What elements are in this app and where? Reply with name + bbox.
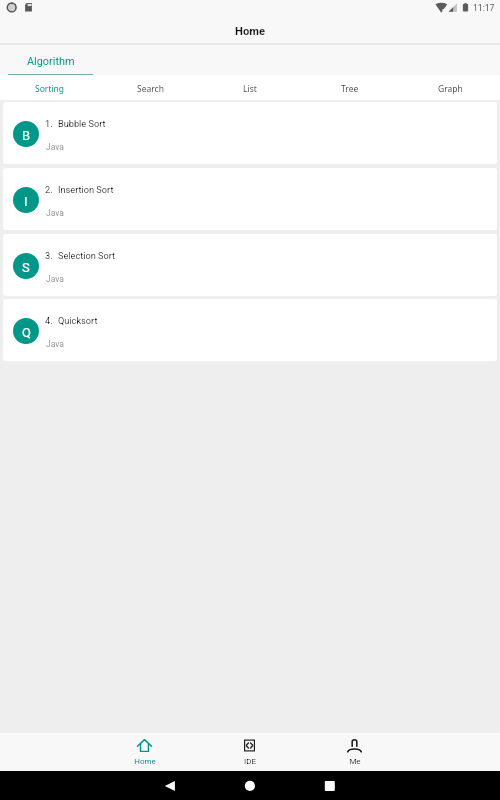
button[interactable]: Tree [300,75,400,100]
staticText: Home [235,25,265,38]
staticText: B [22,128,31,143]
staticText: 4. [45,315,53,326]
staticText: Selection Sort [58,250,116,261]
staticText: List [243,83,257,95]
staticText: 1. [45,118,53,129]
staticText: Tree [341,83,359,95]
button[interactable]: Q [3,299,497,361]
staticText: 11:17 [473,3,495,13]
button[interactable]: Home [92,735,197,771]
button[interactable]: Graph [400,75,500,100]
staticText: Java [46,274,64,284]
staticText: S [22,260,30,275]
staticText: I [24,194,28,209]
staticText: 3. [45,250,53,261]
button[interactable]: Sorting [0,75,100,100]
button[interactable]: B [3,102,497,164]
button[interactable]: IDE [197,735,302,771]
staticText: Search [137,83,164,95]
staticText: Algorithm [27,55,75,68]
staticText: Insertion Sort [58,184,114,195]
button[interactable]: S [3,234,497,296]
staticText: Me [349,757,361,766]
staticText: Q [22,325,31,340]
staticText: IDE [244,757,256,766]
button[interactable]: Search [100,75,200,100]
staticText: Sorting [35,83,65,95]
staticText: Java [46,339,64,349]
button[interactable]: Me [302,735,407,771]
button[interactable]: I [3,168,497,230]
staticText: Home [134,757,156,766]
staticText: Graph [438,83,463,95]
button[interactable]: List [200,75,300,100]
button[interactable]: Algorithm [8,45,93,75]
staticText: Java [46,208,64,218]
staticText: Java [46,142,64,152]
staticText: Bubble Sort [58,118,106,129]
staticText: 2. [45,184,53,195]
staticText: Quicksort [58,315,98,326]
